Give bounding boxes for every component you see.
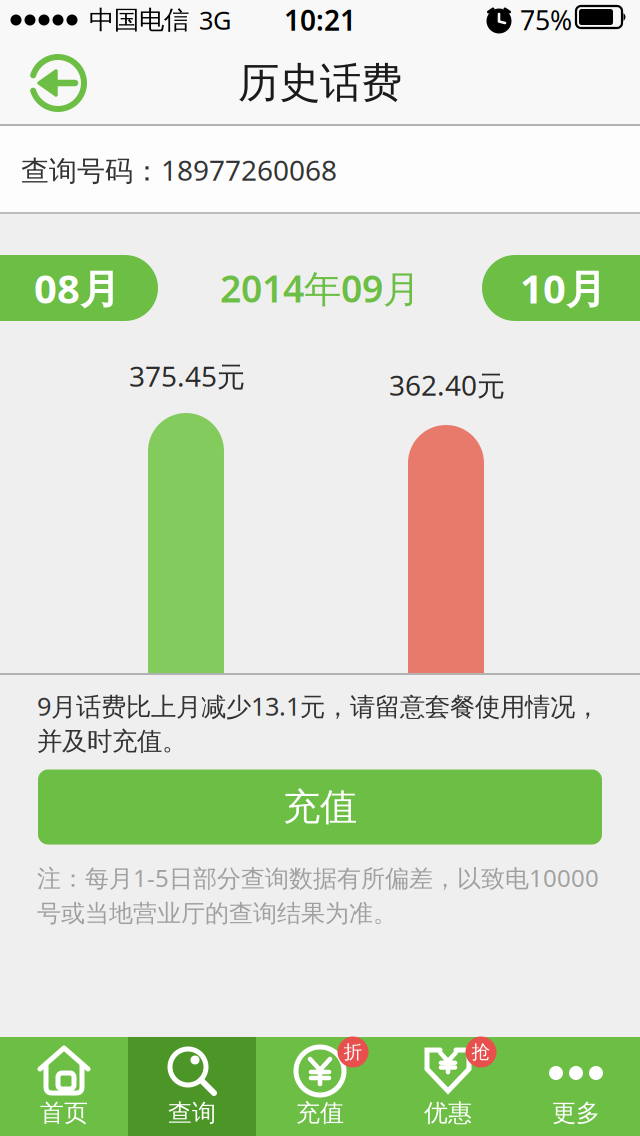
staticText: 优惠: [424, 1098, 472, 1128]
staticText: 375.45元: [129, 357, 245, 395]
staticText: 充值: [296, 1098, 344, 1128]
staticText: 查询号码：18977260068: [21, 151, 337, 189]
button[interactable]: 查询: [128, 1037, 256, 1136]
staticText: 充值: [283, 784, 357, 830]
button[interactable]: Back: [20, 45, 96, 121]
staticText: 折: [343, 1040, 362, 1063]
staticText: 10:21: [284, 1, 356, 39]
button[interactable]: 充值: [38, 769, 602, 844]
staticText: 75%: [520, 2, 572, 38]
staticText: 10月: [520, 261, 606, 314]
staticText: 2014年09月: [220, 263, 420, 313]
staticText: 查询: [168, 1098, 216, 1128]
button[interactable]: 更多: [512, 1037, 640, 1136]
button[interactable]: 首页: [0, 1037, 128, 1136]
staticText: 362.40元: [389, 366, 505, 404]
button[interactable]: 10月: [482, 255, 640, 321]
staticText: 08月: [34, 261, 120, 314]
button[interactable]: 08月: [0, 255, 158, 321]
staticText: 首页: [40, 1098, 88, 1128]
staticText: 注：每月1-5日部分查询数据有所偏差，以致电10000 号或当地营业厅的查询结果…: [37, 862, 599, 928]
button[interactable]: 充值: [256, 1037, 384, 1136]
staticText: 9月话费比上月减少13.1元，请留意套餐使用情况， 并及时充值。: [37, 689, 600, 757]
staticText: 抢: [471, 1040, 490, 1063]
staticText: 更多: [552, 1098, 600, 1128]
staticText: 历史话费: [238, 58, 402, 108]
staticText: 中国电信: [89, 4, 189, 35]
button[interactable]: 优惠: [384, 1037, 512, 1136]
staticText: 3G: [199, 3, 231, 37]
